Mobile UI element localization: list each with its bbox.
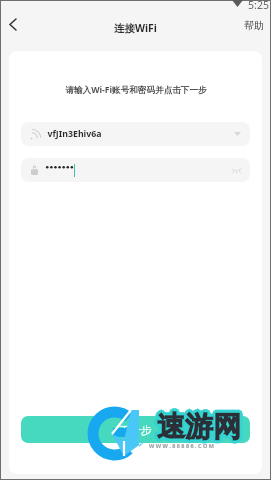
staticText: 速游网 (157, 408, 241, 443)
staticText: 帮助 (244, 19, 264, 32)
staticText: W W W . 8 6 8 8 6 . C O M (149, 442, 215, 449)
button[interactable]: Show password (232, 168, 241, 173)
staticText: 连接WiFi (114, 21, 157, 35)
staticText: 速游网 (156, 407, 240, 442)
staticText: 速游网 (155, 408, 239, 443)
staticText: 速游网 (156, 410, 240, 445)
staticText: 速游网 (159, 410, 243, 445)
staticText: 速游网 (158, 410, 242, 445)
button[interactable]: Show password (21, 158, 250, 182)
staticText: 速游网 (158, 409, 242, 444)
staticText: 速游网 (155, 410, 239, 445)
staticText: 速游网 (158, 407, 242, 442)
staticText: 速游网 (157, 409, 241, 444)
staticText: 速游网 (160, 409, 244, 444)
staticText: 速游网 (159, 409, 243, 444)
staticText: 速游网 (157, 411, 241, 446)
staticText: 速游网 (157, 410, 241, 445)
staticText: 速游网 (155, 407, 239, 442)
staticText: 速游网 (156, 409, 240, 444)
staticText: 速游网 (154, 409, 238, 444)
button[interactable]: vfJIn3Ehiv6a (21, 122, 250, 146)
staticText: 速游网 (157, 409, 241, 444)
staticText: 速游网 (159, 408, 243, 443)
staticText: 速游网 (157, 412, 241, 447)
staticText: 速游网 (156, 408, 240, 443)
staticText: vfJIn3Ehiv6a (47, 128, 102, 140)
staticText: 速游网 (159, 407, 243, 442)
staticText: 速游网 (159, 411, 243, 446)
staticText: 5:25 (248, 0, 269, 12)
button[interactable]: 帮助 (237, 14, 271, 37)
staticText: 请输入Wi-Fi账号和密码并点击下一步 (65, 84, 207, 96)
staticText: 速游网 (158, 411, 242, 446)
button[interactable]: Back (1, 12, 25, 36)
staticText: 速游网 (155, 409, 239, 444)
staticText: 下一步 (119, 423, 152, 437)
staticText: 速游网 (156, 411, 240, 446)
staticText: 速游网 (158, 408, 242, 443)
staticText: 速游网 (157, 407, 241, 442)
button[interactable]: 下一步 (21, 416, 250, 443)
staticText: 速游网 (155, 411, 239, 446)
staticText: 速游网 (157, 406, 241, 441)
